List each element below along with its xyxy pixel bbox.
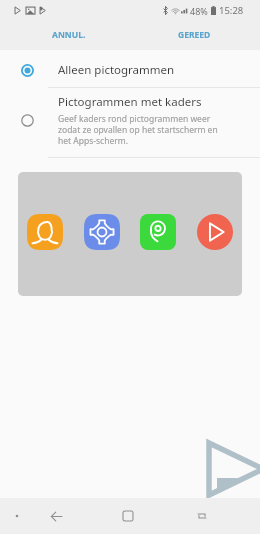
staticText: Geef kaders rond pictogrammen weer zodat… xyxy=(58,113,218,146)
staticText: 48% xyxy=(190,5,208,17)
staticText: Alleen pictogrammen xyxy=(58,62,175,78)
staticText: ANNUL. xyxy=(52,29,86,41)
button[interactable]: Recent xyxy=(180,498,224,534)
button[interactable]: Terug xyxy=(34,498,78,534)
button[interactable]: Instellingen xyxy=(84,214,120,250)
button[interactable]: Pictogrammen met kaders xyxy=(0,88,260,157)
button[interactable]: Afspelen xyxy=(197,214,233,250)
button[interactable]: Kaarten xyxy=(140,214,176,250)
button[interactable]: GEREED xyxy=(178,20,211,50)
staticText: Pictogrammen met kaders xyxy=(58,94,202,110)
button[interactable]: Menu xyxy=(3,498,31,534)
button[interactable]: ANNUL. xyxy=(52,20,86,50)
button[interactable]: Contacten xyxy=(27,214,63,250)
staticText: 15:28 xyxy=(219,4,244,17)
button[interactable]: Alleen pictogrammen xyxy=(0,56,260,87)
button[interactable]: Home xyxy=(106,498,150,534)
staticText: GEREED xyxy=(178,29,211,41)
